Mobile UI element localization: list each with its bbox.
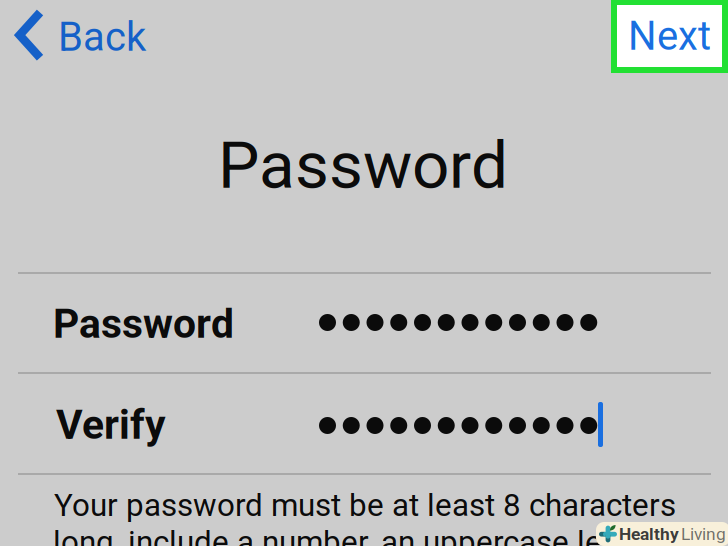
- staticText: Back: [58, 14, 146, 60]
- staticText: Next: [628, 13, 711, 59]
- staticText: Living: [681, 524, 726, 544]
- staticText: Verify: [56, 401, 166, 449]
- staticText: long, include a number, an uppercase le: [53, 524, 602, 546]
- staticText: Password: [53, 300, 234, 348]
- staticText: Password: [218, 127, 508, 204]
- staticText: Healthy: [619, 524, 679, 544]
- staticText: Your password must be at least 8 charact…: [54, 487, 676, 524]
- button[interactable]: Next: [611, 0, 728, 73]
- button[interactable]: Back: [0, 0, 160, 70]
